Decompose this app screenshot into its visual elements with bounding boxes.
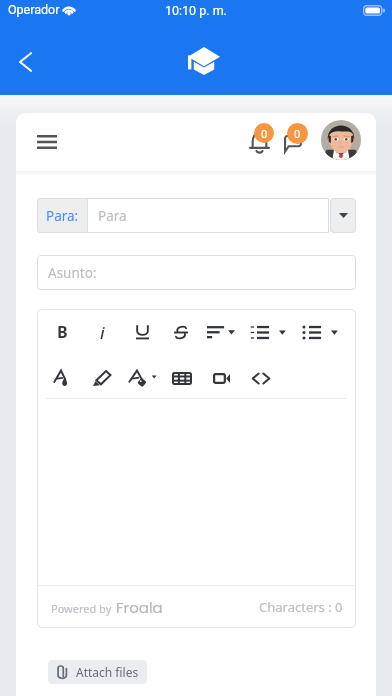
staticText: Asunto:	[48, 264, 97, 282]
button[interactable]: Messages	[280, 119, 322, 165]
button[interactable]: Menu	[28, 123, 66, 161]
staticText: B	[57, 321, 68, 343]
button[interactable]: Align	[201, 314, 241, 350]
button[interactable]: Notifications	[246, 119, 288, 165]
staticText: 0	[294, 126, 301, 141]
button[interactable]: Para	[87, 198, 329, 233]
button[interactable]: Text colour	[44, 361, 78, 395]
button[interactable]: Background colour	[126, 361, 160, 395]
button[interactable]: Strikethrough	[163, 314, 199, 350]
staticText: Para:	[46, 207, 79, 225]
button[interactable]: Italic	[84, 314, 120, 350]
button[interactable]: Para:	[37, 198, 88, 233]
button[interactable]: Back	[5, 42, 45, 82]
button[interactable]: Attach files	[48, 660, 147, 684]
staticText: Attach files	[76, 664, 139, 680]
staticText: Froala	[116, 597, 163, 618]
button[interactable]: Highlight	[85, 361, 119, 395]
button[interactable]: Bullet list	[298, 314, 342, 350]
button[interactable]: Insert video	[204, 361, 238, 395]
button[interactable]: Profile	[321, 120, 361, 160]
button[interactable]: Underline	[124, 314, 160, 350]
button[interactable]: Bold	[44, 314, 80, 350]
staticText: 0	[261, 126, 268, 141]
button[interactable]: Insert table	[165, 361, 199, 395]
staticText: 10:10 p. m.	[165, 3, 227, 18]
button[interactable]: Ordered list	[246, 314, 290, 350]
staticText: Para	[98, 207, 127, 225]
button[interactable]: Asunto:	[37, 255, 356, 290]
staticText: i	[100, 321, 105, 344]
button[interactable]: Show more recipients	[330, 198, 356, 233]
staticText: Operador	[8, 2, 60, 17]
button[interactable]: Code view	[244, 361, 278, 395]
staticText: Powered by	[51, 601, 115, 616]
staticText: Characters : 0	[259, 598, 343, 616]
